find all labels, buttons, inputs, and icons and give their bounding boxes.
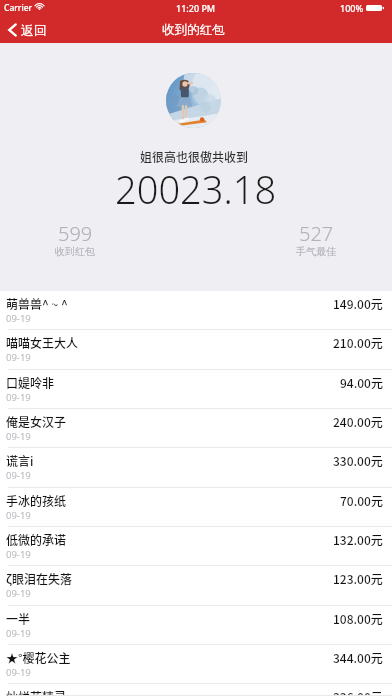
button[interactable]: 返回 [0,19,57,41]
staticText: ★°樱花公主 [6,649,71,666]
staticText: 336.00元 [333,688,383,696]
button[interactable]: 手冰的孩纸 [0,488,392,527]
staticText: 姐很高也很傲共收到 [140,148,249,165]
button[interactable]: 一半 [0,606,392,645]
staticText: 手气最佳 [296,245,336,258]
staticText: 返回 [21,22,47,38]
staticText: 萌兽兽^ ~ ^ [6,295,68,312]
staticText: 收到红包 [55,245,95,258]
staticText: 一半 [6,610,31,627]
staticText: 11:20 PM [176,2,216,14]
staticText: 收到的红包 [162,22,225,38]
staticText: 20023.18 [115,163,277,215]
staticText: 09-19 [6,391,31,404]
staticText: 344.00元 [333,649,383,666]
staticText: 09-19 [6,351,31,364]
staticText: 240.00元 [333,413,383,430]
staticText: 低微的承诺 [6,531,67,548]
staticText: 108.00元 [333,610,383,627]
staticText: 09-19 [6,509,31,522]
staticText: 100% [340,2,364,14]
staticText: 70.00元 [340,492,383,509]
button[interactable]: 口媞呤非 [0,370,392,409]
staticText: 俺是女汉子 [6,413,67,430]
button[interactable]: 灿烂花精灵 [0,684,392,696]
staticText: 谎言i [6,452,34,469]
button[interactable]: 俺是女汉子 [0,409,392,448]
staticText: ζ眼泪在失落 [6,570,72,587]
staticText: 210.00元 [333,334,383,351]
staticText: Carrier [4,2,33,14]
staticText: 09-19 [6,587,31,600]
staticText: 灿烂花精灵 [6,688,67,696]
staticText: 149.00元 [333,295,383,312]
staticText: 330.00元 [333,452,383,469]
button[interactable]: ★°樱花公主 [0,645,392,684]
staticText: 09-19 [6,312,31,325]
staticText: 09-19 [6,627,31,640]
staticText: 09-19 [6,430,31,443]
staticText: 09-19 [6,548,31,561]
staticText: 599 [58,220,93,247]
staticText: 手冰的孩纸 [6,492,67,509]
button[interactable]: 喵喵女王大人 [0,330,392,370]
staticText: 527 [299,220,334,247]
button[interactable]: 萌兽兽^ ~ ^ [0,291,392,330]
staticText: 09-19 [6,666,31,679]
staticText: 喵喵女王大人 [6,334,79,351]
staticText: 132.00元 [333,531,383,548]
button[interactable]: 低微的承诺 [0,527,392,566]
staticText: 09-19 [6,469,31,482]
button[interactable]: ζ眼泪在失落 [0,566,392,606]
staticText: 94.00元 [340,374,383,391]
staticText: 口媞呤非 [6,374,55,391]
button[interactable]: 谎言i [0,448,392,488]
staticText: 123.00元 [333,570,383,587]
